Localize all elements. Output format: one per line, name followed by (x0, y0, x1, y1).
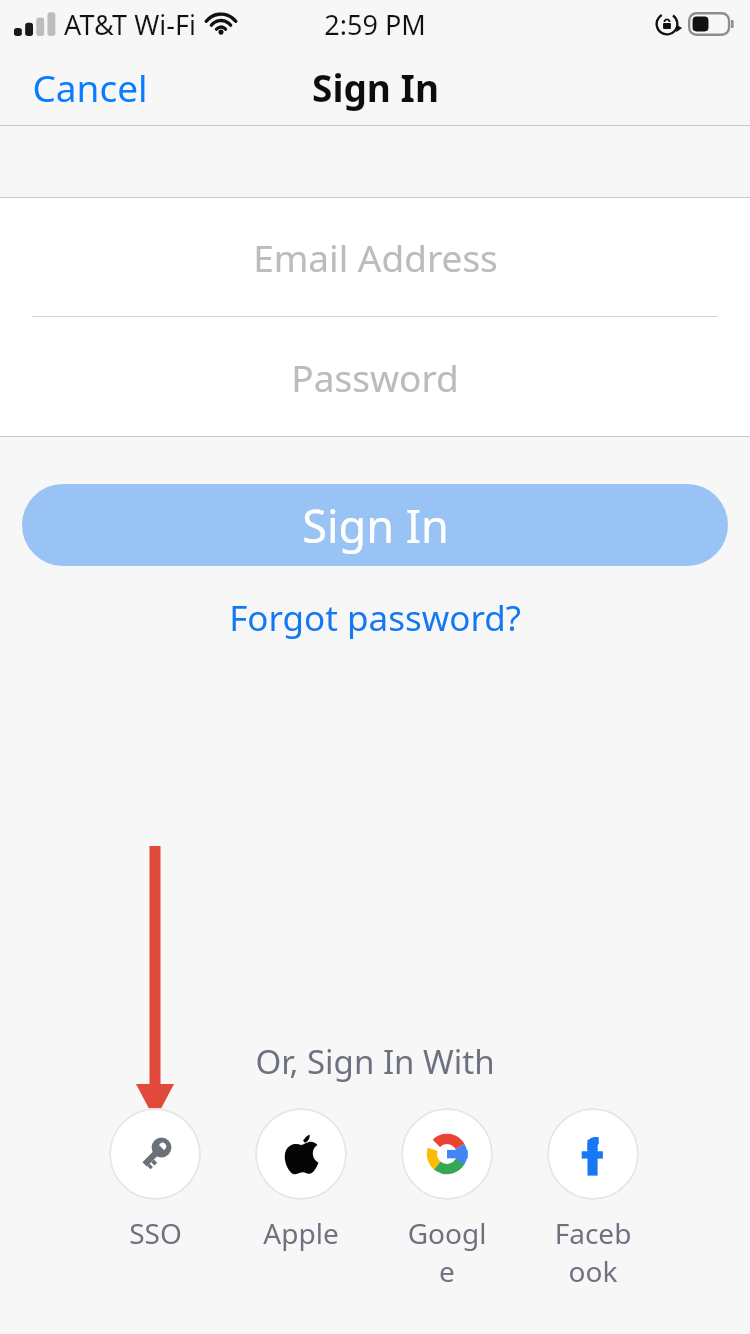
staticText: Email Address (253, 232, 498, 282)
button[interactable]: Password (0, 317, 750, 436)
button[interactable]: Cancel (18, 54, 162, 120)
staticText: Apple (263, 1214, 339, 1252)
button[interactable]: Forgot password? (209, 588, 541, 648)
staticText: Google (401, 1214, 493, 1290)
staticText: Sign In (302, 495, 449, 556)
staticText: 2:59 PM (324, 6, 426, 43)
staticText: Cancel (32, 62, 148, 112)
button[interactable]: Sign in with Apple (255, 1108, 347, 1252)
button[interactable]: Sign in with Google (401, 1108, 493, 1290)
button[interactable]: Sign in with Facebook (547, 1108, 639, 1290)
staticText: AT&T Wi-Fi (64, 6, 196, 43)
staticText: Forgot password? (229, 594, 521, 642)
button[interactable]: Email Address (0, 198, 750, 316)
staticText: Sign In (312, 62, 439, 112)
staticText: Password (291, 352, 459, 402)
staticText: SSO (129, 1214, 182, 1252)
staticText: Or, Sign In With (255, 1039, 495, 1084)
button[interactable]: Sign in with SSO (109, 1108, 201, 1252)
button[interactable]: Sign In (22, 484, 728, 566)
staticText: Facebook (547, 1214, 639, 1290)
